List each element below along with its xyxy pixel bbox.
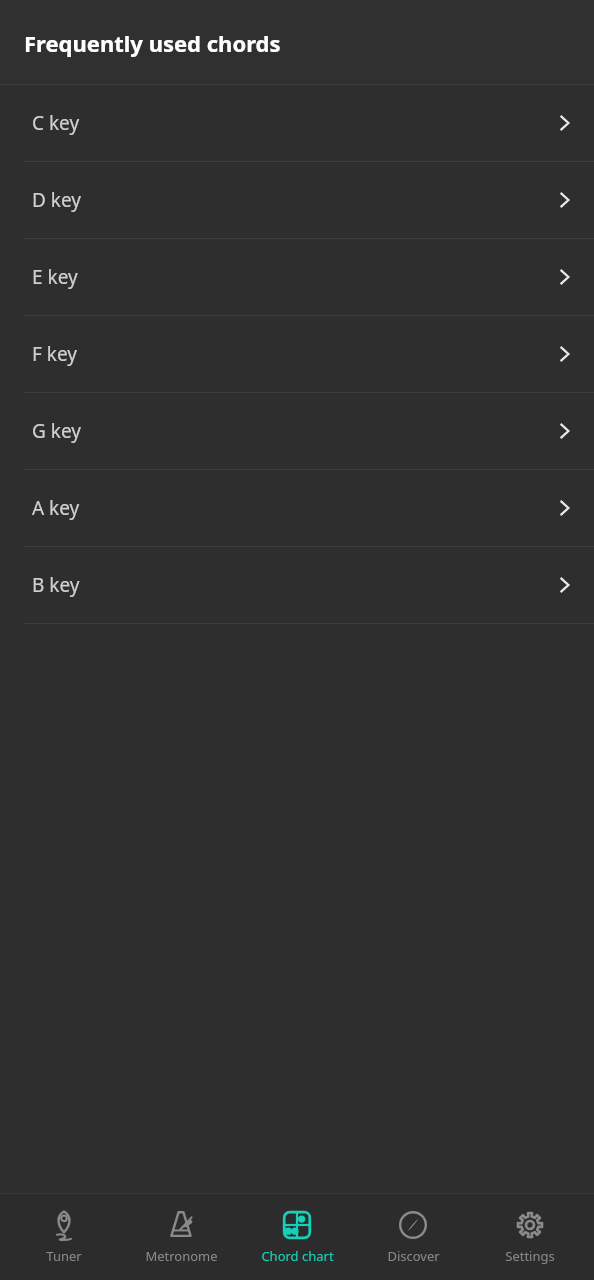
staticText: D key xyxy=(32,187,81,213)
staticText: F key xyxy=(32,341,77,367)
button[interactable]: B key xyxy=(0,547,594,623)
button[interactable]: Settings xyxy=(478,1209,582,1265)
staticText: C key xyxy=(32,110,80,136)
staticText: G key xyxy=(32,418,81,444)
button[interactable]: Chord chart xyxy=(245,1209,349,1265)
staticText: Metronome xyxy=(145,1247,218,1265)
button[interactable]: C key xyxy=(0,85,594,161)
staticText: Discover xyxy=(387,1247,440,1265)
button[interactable]: A key xyxy=(0,470,594,546)
staticText: Settings xyxy=(505,1247,555,1265)
button[interactable]: F key xyxy=(0,316,594,392)
staticText: A key xyxy=(32,495,80,521)
staticText: Tuner xyxy=(46,1247,82,1265)
button[interactable]: Discover xyxy=(361,1209,465,1265)
staticText: Chord chart xyxy=(261,1247,334,1265)
staticText: E key xyxy=(32,264,78,290)
button[interactable]: G key xyxy=(0,393,594,469)
staticText: Frequently used chords xyxy=(24,28,281,58)
button[interactable]: Tuner xyxy=(12,1209,116,1265)
staticText: B key xyxy=(32,572,80,598)
button[interactable]: D key xyxy=(0,162,594,238)
button[interactable]: E key xyxy=(0,239,594,315)
button[interactable]: Metronome xyxy=(129,1209,233,1265)
